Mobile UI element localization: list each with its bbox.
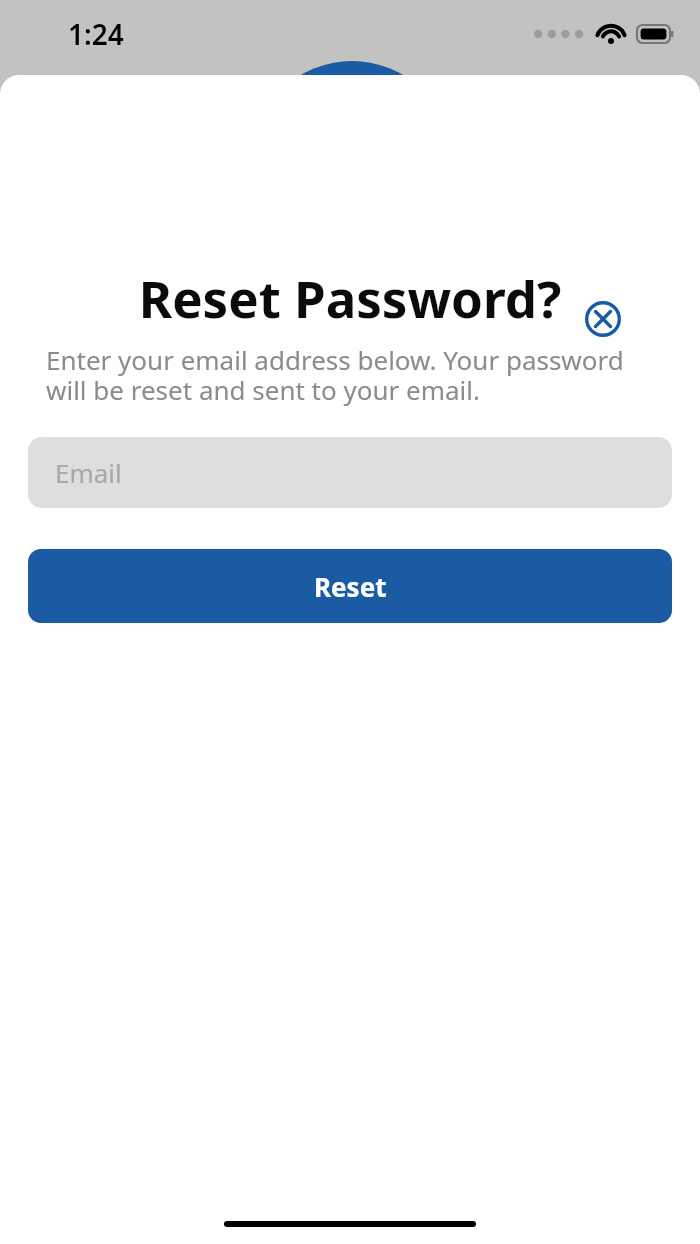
button[interactable]: Close <box>578 294 628 344</box>
button[interactable]: Email <box>28 437 672 508</box>
staticText: Reset Password? <box>0 263 700 332</box>
staticText: Email <box>55 455 122 490</box>
staticText: 1:24 <box>68 15 124 53</box>
button[interactable]: Reset <box>28 549 672 623</box>
staticText: Enter your email address below. Your pas… <box>46 342 670 408</box>
staticText: Reset <box>314 569 387 604</box>
